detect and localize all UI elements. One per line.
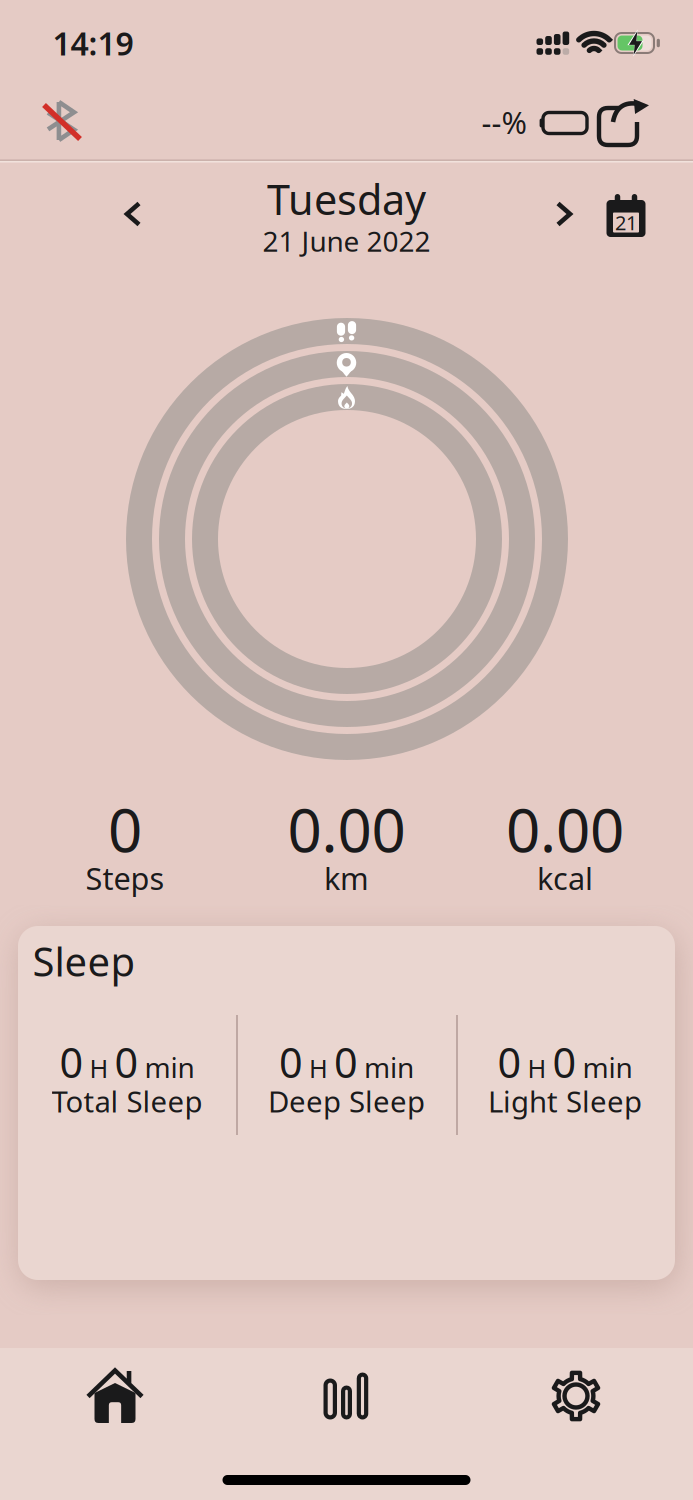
staticText: min — [582, 1049, 632, 1086]
staticText: H — [527, 1051, 546, 1085]
staticText: 0 — [114, 1035, 138, 1089]
button[interactable]: Bluetooth disconnected — [44, 100, 84, 144]
staticText: 14:19 — [52, 22, 133, 64]
staticText: 0 — [59, 1035, 83, 1089]
staticText: Tuesday — [267, 172, 426, 226]
staticText: Steps — [85, 858, 164, 898]
button[interactable]: Next day — [548, 193, 580, 234]
button[interactable]: Home — [80, 1361, 150, 1431]
staticText: Light Sleep — [488, 1081, 642, 1120]
staticText: H — [89, 1051, 108, 1085]
staticText: Sleep — [32, 934, 135, 987]
button[interactable]: Previous day — [117, 193, 149, 234]
staticText: 0 — [552, 1035, 576, 1089]
staticText: 0.00 — [506, 789, 624, 869]
staticText: 21 June 2022 — [262, 222, 430, 260]
button[interactable]: Share — [599, 100, 649, 146]
staticText: kcal — [537, 858, 593, 898]
staticText: 0 — [108, 789, 142, 869]
button[interactable]: Statistics — [315, 1364, 377, 1427]
staticText: 0 — [497, 1035, 521, 1089]
staticText: min — [144, 1049, 194, 1086]
staticText: Deep Sleep — [268, 1081, 425, 1120]
staticText: 0 — [279, 1035, 303, 1089]
staticText: H — [309, 1051, 328, 1085]
staticText: km — [324, 858, 369, 898]
button[interactable]: Settings — [544, 1362, 608, 1430]
staticText: 0 — [334, 1035, 358, 1089]
staticText: 21 — [615, 209, 637, 236]
staticText: Total Sleep — [51, 1081, 202, 1120]
staticText: --% — [481, 102, 526, 142]
staticText: 0.00 — [287, 789, 405, 869]
staticText: min — [364, 1049, 414, 1086]
button[interactable]: Choose date — [606, 193, 645, 237]
